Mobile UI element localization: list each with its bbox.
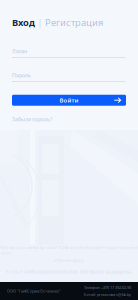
staticText: Войти	[59, 96, 78, 104]
staticText: E-mail: prosecutors@bk.by	[84, 292, 131, 297]
staticText: This site is protected by reCAPTCHA and …	[0, 245, 138, 256]
button[interactable]: Вход	[12, 16, 35, 29]
staticText: Логин	[12, 48, 27, 55]
staticText: Телефон: +375 17 392-02-90	[84, 285, 131, 290]
staticText: ООО "ГайбСервисОстальное"	[7, 288, 61, 294]
button[interactable]: Войти	[12, 95, 126, 106]
staticText: Забыли пароль?	[12, 116, 52, 123]
button[interactable]: Регистрация	[45, 16, 103, 29]
button[interactable]: Забыли пароль?	[12, 116, 52, 123]
staticText: Вход	[12, 16, 35, 29]
staticText: |	[37, 17, 42, 29]
staticText: of Service apply.	[53, 257, 84, 263]
staticText: Регистрация	[45, 16, 103, 29]
staticText: Пароль	[12, 72, 31, 79]
staticText: © 2025 ГайбСервисОстальное. Все права за…	[6, 268, 132, 275]
